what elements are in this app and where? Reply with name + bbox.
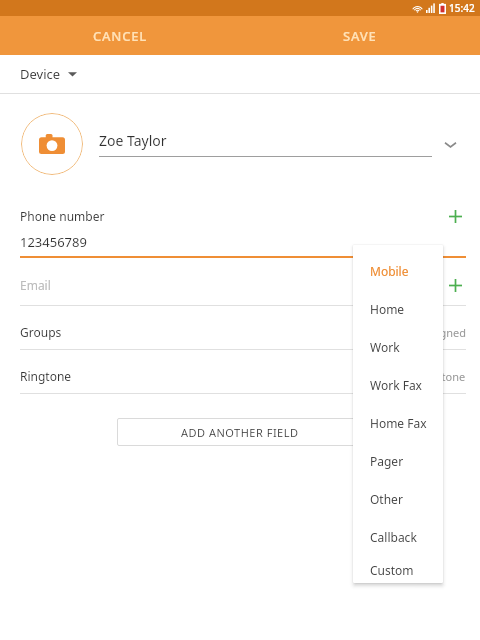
staticText: Home <box>370 301 405 317</box>
staticText: Other <box>370 491 403 507</box>
staticText: Default ringtone <box>380 369 466 384</box>
staticText: Mobile <box>370 263 409 279</box>
button[interactable]: Work Fax <box>353 366 443 404</box>
button[interactable]: Add photo <box>21 113 83 175</box>
staticText: CANCEL <box>93 27 148 45</box>
staticText: Custom <box>370 562 414 578</box>
staticText: Device <box>20 65 61 83</box>
staticText: SAVE <box>343 27 377 45</box>
staticText: 15:42 <box>449 1 475 15</box>
staticText: Callback <box>370 529 417 545</box>
staticText: ADD ANOTHER FIELD <box>181 425 299 440</box>
staticText: Work Fax <box>370 377 422 393</box>
button[interactable]: SAVE <box>240 16 480 55</box>
button[interactable]: Email <box>0 274 480 306</box>
button[interactable]: Work <box>353 328 443 366</box>
button[interactable]: Home Fax <box>353 404 443 442</box>
staticText: Pager <box>370 453 404 469</box>
staticText: Phone number <box>20 208 105 224</box>
button[interactable]: Home <box>353 290 443 328</box>
staticText: Home Fax <box>370 415 427 431</box>
button[interactable]: Groups <box>0 324 480 350</box>
staticText: Ringtone <box>20 368 72 384</box>
button[interactable]: Ringtone <box>0 368 480 394</box>
button[interactable]: CANCEL <box>0 16 240 55</box>
button[interactable]: ADD ANOTHER FIELD <box>117 418 363 446</box>
button[interactable]: Custom <box>353 556 443 583</box>
button[interactable]: Device <box>0 55 480 93</box>
button[interactable]: Callback <box>353 518 443 556</box>
staticText: Email <box>20 277 51 293</box>
staticText: Not assigned <box>398 325 466 340</box>
button[interactable]: Other <box>353 480 443 518</box>
staticText: Work <box>370 339 400 355</box>
button[interactable]: Mobile <box>353 252 443 290</box>
button[interactable]: Add phone number <box>444 205 466 227</box>
button[interactable]: Pager <box>353 442 443 480</box>
staticText: Zoe Taylor <box>99 131 167 150</box>
button[interactable]: Expand name <box>432 126 468 162</box>
staticText: 123456789 <box>20 233 87 251</box>
staticText: Groups <box>20 324 62 340</box>
button[interactable]: Add email <box>444 274 466 296</box>
